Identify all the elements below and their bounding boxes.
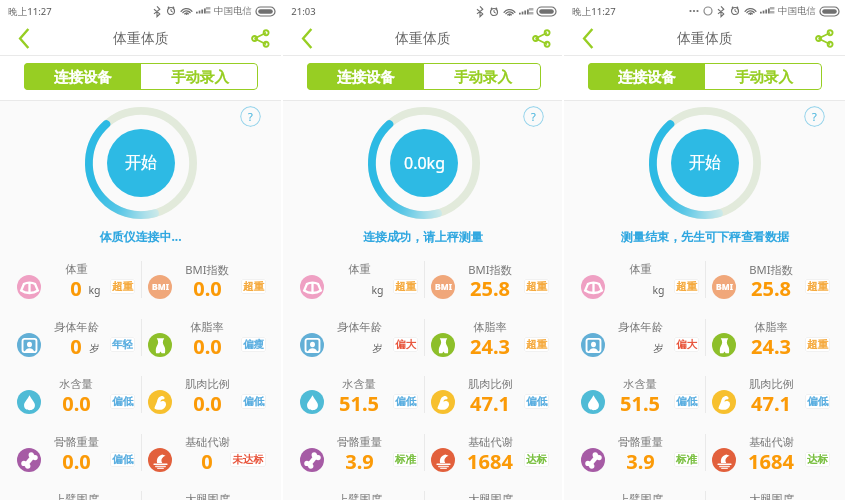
button[interactable]: 体脂率 xyxy=(131,316,268,374)
button[interactable]: Help xyxy=(804,106,825,127)
staticText: 大腿围度 xyxy=(185,492,230,500)
button[interactable]: 骨骼重量 xyxy=(283,431,420,489)
button[interactable]: Back xyxy=(564,22,612,55)
button[interactable]: 手动录入 xyxy=(424,63,541,90)
staticText: 0 xyxy=(70,275,82,299)
button[interactable]: 体重 xyxy=(564,258,701,316)
staticText: 体脂率 xyxy=(754,320,788,334)
staticText: 上臂围度 xyxy=(337,492,382,500)
staticText: 达标 xyxy=(807,453,828,466)
button[interactable]: 肌肉比例 xyxy=(695,373,832,431)
button[interactable]: 身体年龄 xyxy=(0,316,137,374)
button[interactable]: Back xyxy=(0,22,48,55)
button[interactable]: Help xyxy=(523,106,544,127)
staticText: BMI xyxy=(152,281,169,293)
button[interactable]: 大腿围度 xyxy=(414,488,551,500)
staticText: 开始 xyxy=(125,153,157,173)
staticText: 47.1 xyxy=(470,390,510,414)
button[interactable]: 肌肉比例 xyxy=(414,373,551,431)
button[interactable]: 上臂围度 xyxy=(283,488,420,500)
button[interactable]: 手动录入 xyxy=(141,63,258,90)
button[interactable]: 体重 xyxy=(0,258,137,316)
button[interactable]: 水含量 xyxy=(283,373,420,431)
staticText: 大腿围度 xyxy=(749,492,794,500)
button[interactable]: 上臂围度 xyxy=(0,488,137,500)
button[interactable]: 大腿围度 xyxy=(131,488,268,500)
staticText: 连接设备 xyxy=(618,68,676,86)
staticText: 手动录入 xyxy=(454,68,512,86)
button[interactable]: 身体年龄 xyxy=(283,316,420,374)
staticText: 0 xyxy=(70,333,82,357)
staticText: 0.0 xyxy=(62,390,91,414)
button[interactable]: Back xyxy=(283,22,331,55)
staticText: 24.3 xyxy=(751,333,791,357)
staticText: 1684 xyxy=(467,448,513,472)
staticText: 偏低 xyxy=(807,395,828,408)
staticText: 连接设备 xyxy=(337,68,395,86)
staticText: 肌肉比例 xyxy=(749,377,794,391)
staticText: 岁 xyxy=(89,342,100,355)
staticText: 晚上11:27 xyxy=(572,5,616,18)
staticText: 3.9 xyxy=(345,448,374,472)
staticText: BMI指数 xyxy=(185,262,229,277)
button[interactable]: 骨骼重量 xyxy=(0,431,137,489)
button[interactable]: 开始 xyxy=(671,129,739,197)
staticText: 超重 xyxy=(807,338,828,351)
button[interactable]: 体脂率 xyxy=(414,316,551,374)
button[interactable]: Share xyxy=(239,22,281,55)
staticText: 偏大 xyxy=(676,338,697,351)
staticText: 水含量 xyxy=(623,377,657,391)
staticText: 51.5 xyxy=(339,390,379,414)
button[interactable]: 连接设备 xyxy=(307,63,424,90)
staticText: 体重体质 xyxy=(677,30,733,48)
staticText: 肌肉比例 xyxy=(185,377,230,391)
button[interactable]: 手动录入 xyxy=(705,63,822,90)
staticText: 岁 xyxy=(653,342,664,355)
button[interactable]: BMI xyxy=(131,258,268,316)
button[interactable]: 水含量 xyxy=(0,373,137,431)
button[interactable]: 0.0kg xyxy=(390,129,458,197)
staticText: 偏低 xyxy=(112,395,133,408)
button[interactable]: Help xyxy=(240,106,261,127)
staticText: 中国电信 xyxy=(778,5,816,17)
staticText: BMI xyxy=(435,281,452,293)
staticText: 偏瘦 xyxy=(243,338,264,351)
staticText: 手动录入 xyxy=(171,68,229,86)
staticText: 21:03 xyxy=(291,5,316,18)
staticText: 0.0 xyxy=(193,333,222,357)
button[interactable]: 体脂率 xyxy=(695,316,832,374)
button[interactable]: 连接设备 xyxy=(588,63,705,90)
staticText: 1684 xyxy=(748,448,794,472)
button[interactable]: Share xyxy=(803,22,845,55)
staticText: 上臂围度 xyxy=(54,492,99,500)
staticText: kg xyxy=(371,283,384,297)
button[interactable]: 肌肉比例 xyxy=(131,373,268,431)
staticText: 偏低 xyxy=(112,453,133,466)
button[interactable]: 大腿围度 xyxy=(695,488,832,500)
staticText: 体重体质 xyxy=(395,30,451,48)
button[interactable]: 基础代谢 xyxy=(131,431,268,489)
staticText: kg xyxy=(88,283,101,297)
staticText: 偏低 xyxy=(526,395,547,408)
button[interactable]: Share xyxy=(520,22,562,55)
staticText: 体重 xyxy=(348,262,371,276)
button[interactable]: 基础代谢 xyxy=(695,431,832,489)
button[interactable]: 基础代谢 xyxy=(414,431,551,489)
staticText: 51.5 xyxy=(620,390,660,414)
button[interactable]: 骨骼重量 xyxy=(564,431,701,489)
staticText: BMI指数 xyxy=(749,262,793,277)
staticText: 超重 xyxy=(112,280,133,293)
button[interactable]: 体重 xyxy=(283,258,420,316)
staticText: 体重体质 xyxy=(113,30,169,48)
button[interactable]: 连接设备 xyxy=(24,63,141,90)
staticText: 年轻 xyxy=(112,338,133,351)
button[interactable]: BMI xyxy=(695,258,832,316)
button[interactable]: 上臂围度 xyxy=(564,488,701,500)
button[interactable]: 开始 xyxy=(107,129,175,197)
button[interactable]: 水含量 xyxy=(564,373,701,431)
staticText: 偏低 xyxy=(676,395,697,408)
button[interactable]: 身体年龄 xyxy=(564,316,701,374)
staticText: 偏低 xyxy=(395,395,416,408)
button[interactable]: BMI xyxy=(414,258,551,316)
staticText: 未达标 xyxy=(232,453,264,466)
